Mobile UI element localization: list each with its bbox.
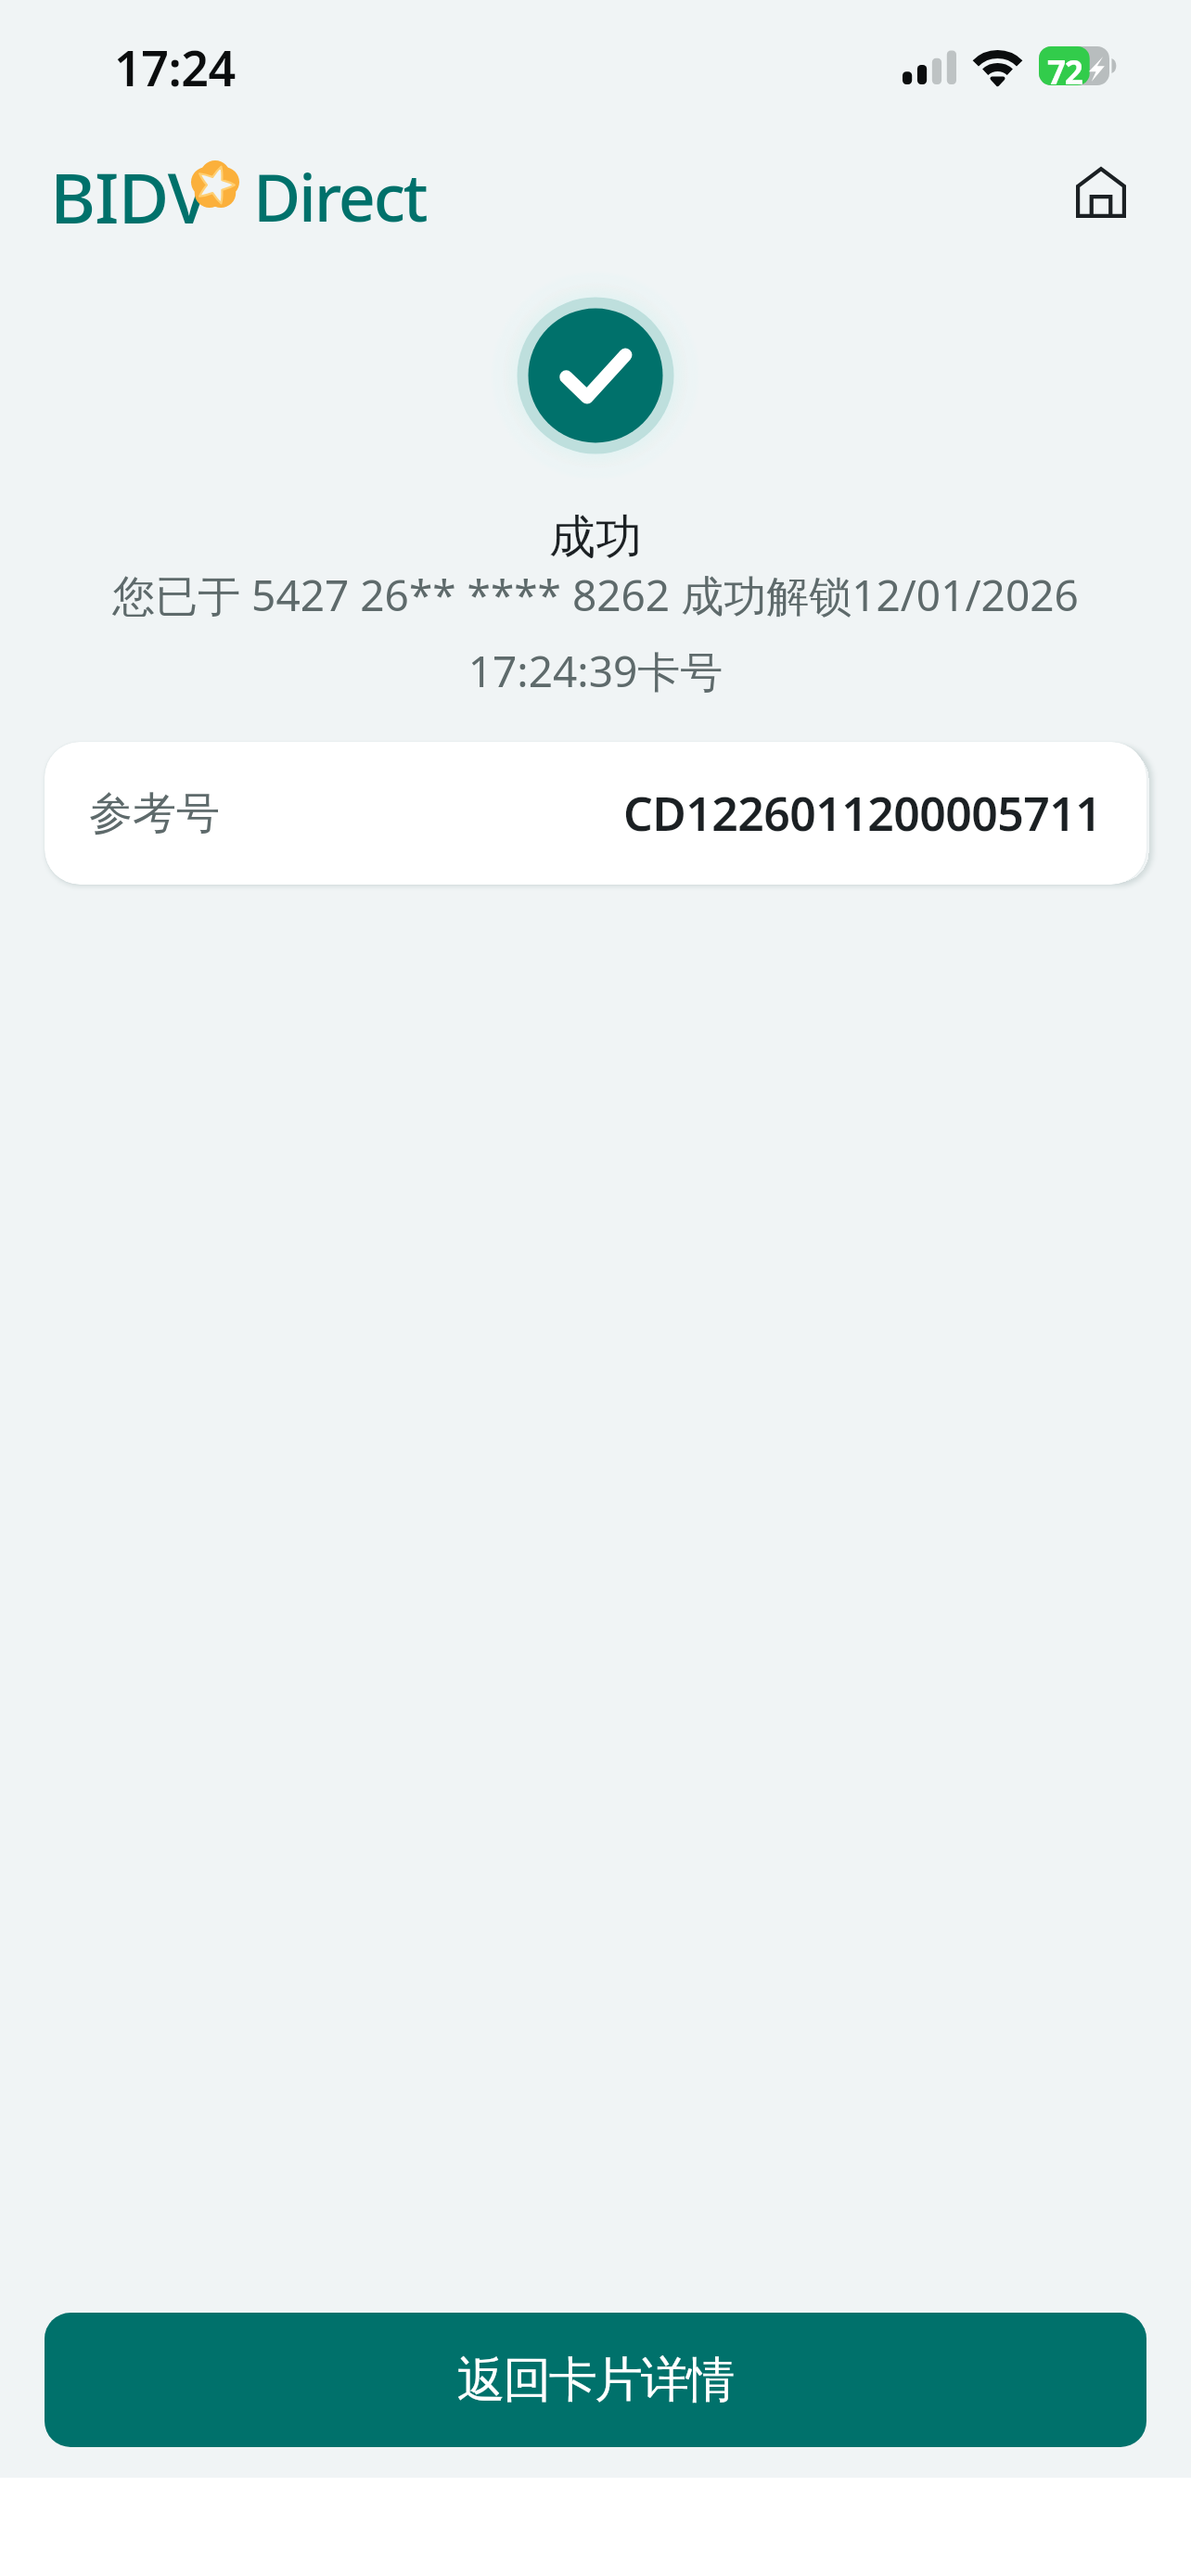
staticText: 参考号 [89,786,220,841]
staticText: BIDV [50,149,210,244]
staticText: Direct [253,152,427,240]
staticText: 返回卡片详情 [458,2350,734,2411]
button[interactable]: 参考号 [45,742,1146,885]
staticText: 成功 [0,508,1191,567]
button[interactable]: 返回卡片详情 [45,2313,1146,2447]
staticText: 72 [1047,50,1082,90]
staticText: 您已于 5427 26** **** 8262 成功解锁12/01/2026 1… [51,566,1140,700]
button[interactable]: Home [1057,148,1145,236]
staticText: CD1226011200005711 [623,782,1102,845]
staticText: 17:24 [114,34,236,100]
